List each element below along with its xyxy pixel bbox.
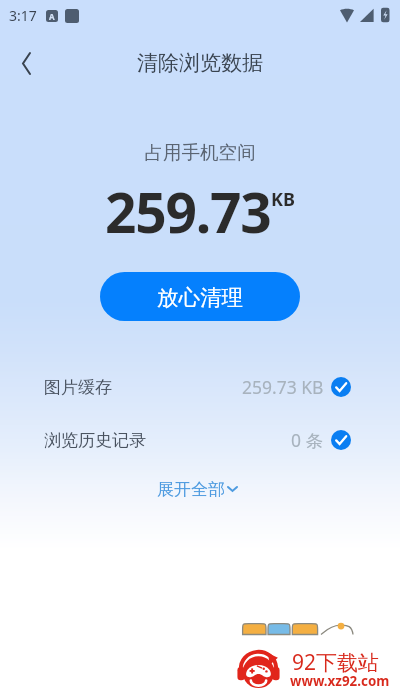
staticText: 图片缓存 [44,377,112,398]
button[interactable]: Back [6,43,46,83]
staticText: 清除浏览数据 [0,50,400,76]
button[interactable]: 浏览历史记录 [0,421,400,459]
staticText: 占用手机空间 [0,141,400,164]
staticText: 259.73 [105,174,271,249]
staticText: 展开全部 [157,479,225,497]
staticText: 0 条 [291,428,324,452]
staticText: 3:17 [9,6,37,25]
button[interactable]: 图片缓存 [0,368,400,406]
button[interactable]: 展开全部 [147,474,248,502]
staticText: A [49,11,55,22]
staticText: 259.73 KB [242,375,324,399]
staticText: 放心清理 [157,284,243,311]
staticText: www.xz92.com [290,672,390,690]
staticText: 浏览历史记录 [44,430,146,451]
staticText: KB [271,187,295,212]
button[interactable]: 放心清理 [100,272,300,321]
staticText: 92下载站 [292,648,380,677]
